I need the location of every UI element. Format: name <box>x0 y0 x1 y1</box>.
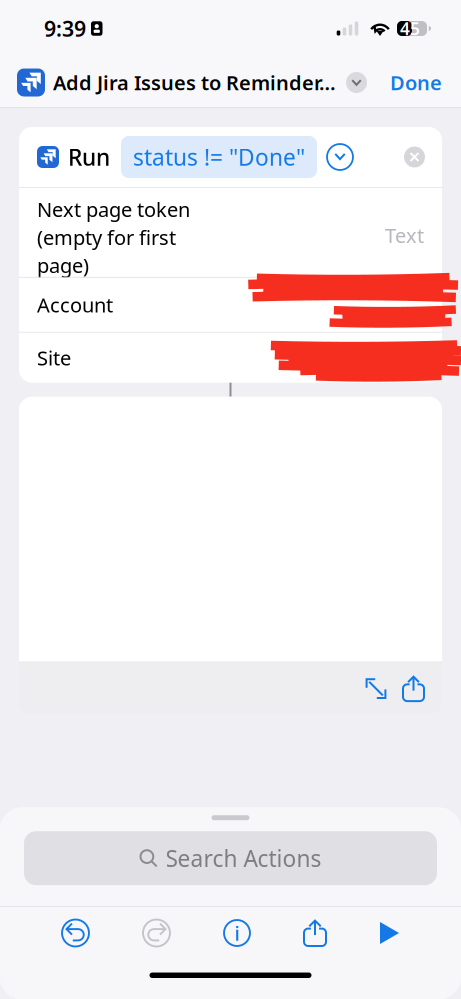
button[interactable]: Site <box>19 333 442 383</box>
staticText: Add Jira Issues to Reminder… <box>53 69 336 96</box>
staticText: status != "Done" <box>133 142 305 172</box>
button[interactable]: Next page token <box>19 188 442 277</box>
staticText: Account <box>37 291 113 318</box>
staticText: Run <box>68 142 110 172</box>
button[interactable]: Done <box>390 69 442 96</box>
staticText: Site <box>37 344 71 371</box>
button[interactable]: Undo <box>62 919 89 946</box>
button[interactable]: Run shortcut <box>380 922 399 944</box>
button[interactable]: Redo <box>143 919 170 946</box>
button[interactable]: Search Actions <box>24 831 437 885</box>
button[interactable]: Shortcut info <box>224 920 250 946</box>
button[interactable]: Expand action <box>327 144 353 170</box>
staticText: i <box>234 920 239 946</box>
staticText: Done <box>390 69 442 96</box>
button[interactable]: Show shortcut details <box>346 72 367 93</box>
button[interactable]: Remove action <box>404 146 425 167</box>
staticText: Next page token <box>37 196 190 222</box>
staticText: (empty for first <box>37 224 176 251</box>
staticText: page) <box>37 252 89 279</box>
button[interactable]: Share output <box>395 668 432 709</box>
staticText: Search Actions <box>165 843 321 873</box>
button[interactable]: status != "Done" <box>121 136 317 178</box>
button[interactable]: Account <box>19 278 442 332</box>
staticText: Text <box>385 222 424 248</box>
staticText: 45 <box>400 17 420 40</box>
button[interactable]: Share shortcut <box>304 920 326 946</box>
staticText: 9:39 <box>44 14 86 43</box>
button[interactable]: Expand output <box>357 670 395 708</box>
